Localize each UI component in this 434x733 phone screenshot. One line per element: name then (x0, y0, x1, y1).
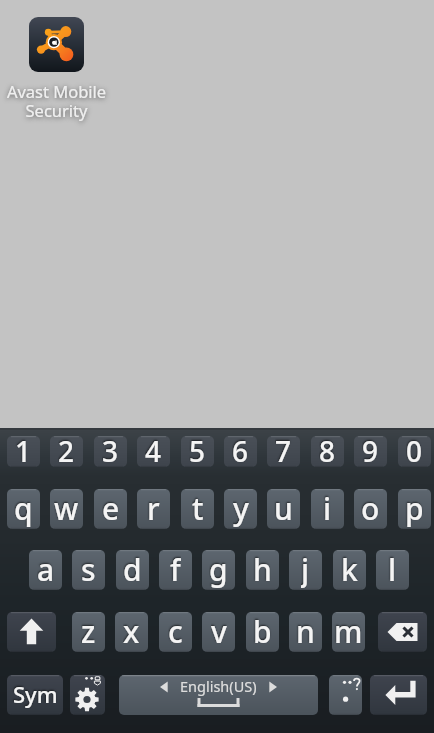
button[interactable]: w (50, 489, 83, 529)
staticText: 6 (232, 436, 249, 463)
button[interactable]: 6 (224, 436, 257, 467)
staticText: i (323, 489, 332, 528)
staticText: y (233, 489, 249, 528)
staticText: 9 (362, 436, 379, 463)
button[interactable]: x (115, 612, 148, 652)
staticText: e (102, 489, 120, 528)
button[interactable]: r (137, 489, 170, 529)
button[interactable]: n (289, 612, 322, 652)
button[interactable]: h (246, 550, 279, 590)
button[interactable]: 4 (137, 436, 170, 467)
staticText: s (81, 550, 96, 589)
staticText: q (14, 489, 33, 528)
button[interactable]: q (7, 489, 40, 529)
staticText: t (192, 489, 204, 528)
staticText: a (37, 550, 55, 589)
button[interactable]: 0 (398, 436, 431, 467)
staticText: b (253, 612, 272, 651)
button[interactable]: z (72, 612, 105, 652)
button[interactable]: m (332, 612, 365, 652)
button[interactable]: e (94, 489, 127, 529)
staticText: x (123, 612, 140, 651)
button[interactable]: s (72, 550, 105, 590)
button[interactable]: l (376, 550, 409, 590)
staticText: English(US) (180, 676, 257, 696)
staticText: v (211, 612, 227, 651)
button[interactable]: 7 (267, 436, 300, 467)
button[interactable]: a (29, 550, 62, 590)
staticText: f (170, 550, 181, 589)
button[interactable]: y (224, 489, 257, 529)
button[interactable]: k (333, 550, 366, 590)
button[interactable]: Shift (7, 612, 56, 652)
button[interactable]: j (289, 550, 322, 590)
staticText: k (341, 550, 358, 589)
staticText: Sym (13, 679, 58, 709)
button[interactable]: Period and symbols (329, 675, 362, 715)
staticText: r (147, 489, 160, 528)
staticText: 5 (189, 436, 206, 463)
staticText: l (388, 550, 397, 589)
button[interactable]: 2 (50, 436, 83, 467)
staticText: m (334, 612, 363, 651)
staticText: Avast Mobile Security (0, 80, 113, 121)
staticText: 0 (406, 436, 423, 463)
button[interactable]: Keyboard settings (70, 675, 105, 715)
staticText: h (253, 550, 272, 589)
button[interactable]: Backspace (378, 612, 427, 652)
staticText: o (361, 489, 380, 528)
button[interactable]: i (311, 489, 344, 529)
button[interactable]: g (202, 550, 235, 590)
staticText: 7 (275, 436, 292, 463)
button[interactable]: u (267, 489, 300, 529)
button[interactable]: 8 (311, 436, 344, 467)
staticText: p (405, 489, 424, 528)
button[interactable]: c (159, 612, 192, 652)
button[interactable]: Sym (7, 675, 63, 715)
staticText: u (274, 489, 293, 528)
staticText: d (123, 550, 142, 589)
staticText: n (296, 612, 315, 651)
staticText: 8 (319, 436, 336, 463)
staticText: z (81, 612, 96, 651)
button[interactable]: Avast Mobile Security (0, 17, 113, 121)
staticText: 2 (58, 436, 75, 463)
staticText: c (168, 612, 183, 651)
button[interactable]: d (116, 550, 149, 590)
button[interactable]: 3 (94, 436, 127, 467)
button[interactable]: v (202, 612, 235, 652)
staticText: w (54, 489, 79, 528)
button[interactable]: f (159, 550, 192, 590)
staticText: 4 (145, 436, 162, 463)
staticText: 1 (15, 436, 32, 463)
button[interactable]: 5 (181, 436, 214, 467)
button[interactable]: 9 (354, 436, 387, 467)
button[interactable]: b (246, 612, 279, 652)
button[interactable]: o (354, 489, 387, 529)
button[interactable]: Enter (370, 675, 427, 715)
button[interactable]: p (398, 489, 431, 529)
button[interactable]: Space, English (US) (119, 675, 318, 715)
staticText: 3 (102, 436, 119, 463)
button[interactable]: t (181, 489, 214, 529)
staticText: j (301, 550, 310, 589)
button[interactable]: 1 (7, 436, 40, 467)
staticText: g (209, 550, 228, 589)
